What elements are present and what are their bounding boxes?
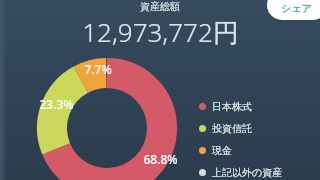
button[interactable]: シェア — [267, 0, 320, 20]
button[interactable]: 資産構成の円グラフ — [0, 0, 320, 180]
staticText: 資産総額 — [140, 0, 180, 12]
staticText: 23.3% — [39, 96, 74, 112]
staticText: 68.8% — [143, 151, 178, 167]
staticText: 上記以外の資産 — [212, 166, 283, 179]
staticText: シェア — [281, 2, 312, 15]
staticText: 投資信託 — [212, 122, 252, 135]
staticText: 7.7% — [84, 61, 112, 77]
staticText: 12,973,772円 — [82, 14, 239, 50]
staticText: 現金 — [212, 144, 232, 157]
button[interactable]: 上記以外の資産 — [199, 165, 287, 180]
staticText: 日本株式 — [212, 100, 252, 113]
button[interactable]: 投資信託 — [199, 121, 256, 136]
button[interactable]: 現金 — [199, 143, 236, 158]
button[interactable]: 日本株式 — [199, 99, 256, 114]
